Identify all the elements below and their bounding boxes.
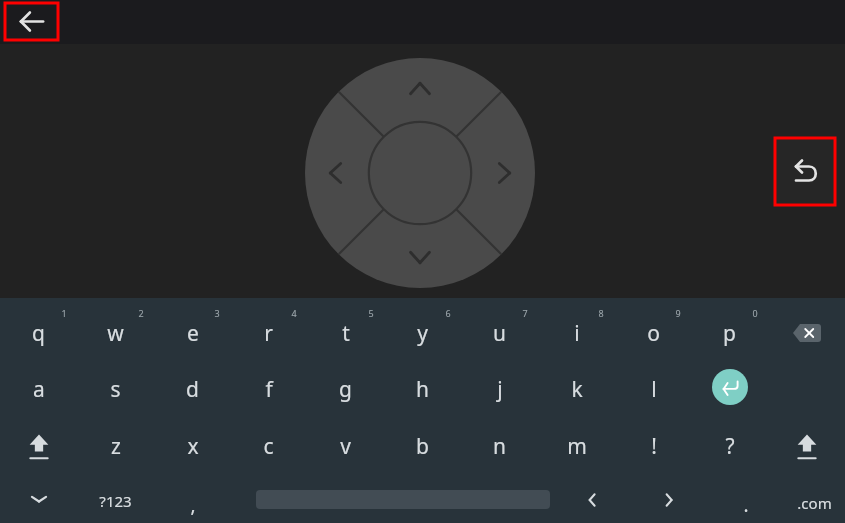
button[interactable]: k xyxy=(538,361,615,417)
button[interactable]: p xyxy=(691,305,768,361)
staticText: o xyxy=(647,319,660,348)
button[interactable]: n xyxy=(461,418,538,474)
staticText: f xyxy=(265,375,273,404)
staticText: 8 xyxy=(598,307,604,319)
button[interactable]: Up xyxy=(395,62,445,102)
button[interactable]: Down xyxy=(395,244,445,284)
staticText: 7 xyxy=(522,307,528,319)
staticText: c xyxy=(263,432,274,461)
button[interactable]: d xyxy=(154,361,231,417)
button[interactable]: m xyxy=(538,418,615,474)
button[interactable]: ? xyxy=(691,418,768,474)
staticText: p xyxy=(723,319,736,348)
staticText: z xyxy=(111,432,121,461)
staticText: d xyxy=(186,375,199,404)
button[interactable]: ! xyxy=(615,418,692,474)
staticText: 5 xyxy=(368,307,374,319)
button[interactable]: r xyxy=(230,305,307,361)
button[interactable]: e xyxy=(154,305,231,361)
button[interactable]: q xyxy=(0,305,77,361)
staticText: v xyxy=(340,432,351,461)
button[interactable]: Enter xyxy=(712,369,748,405)
button[interactable]: o xyxy=(615,305,692,361)
button[interactable]: s xyxy=(77,361,154,417)
button[interactable]: j xyxy=(461,361,538,417)
staticText: s xyxy=(110,375,121,404)
staticText: l xyxy=(651,375,657,404)
button[interactable]: t xyxy=(307,305,384,361)
staticText: g xyxy=(339,375,352,404)
staticText: 0 xyxy=(752,307,758,319)
button[interactable]: f xyxy=(230,361,307,417)
button[interactable]: Right xyxy=(491,148,531,198)
staticText: u xyxy=(493,319,506,348)
button[interactable]: Back xyxy=(5,3,58,40)
button[interactable]: z xyxy=(77,418,154,474)
button[interactable]: i xyxy=(538,305,615,361)
button[interactable]: y xyxy=(384,305,461,361)
button[interactable]: Select xyxy=(369,122,471,224)
button[interactable]: b xyxy=(384,418,461,474)
button[interactable]: h xyxy=(384,361,461,417)
staticText: m xyxy=(567,432,587,461)
button[interactable]: w xyxy=(77,305,154,361)
staticText: n xyxy=(493,432,506,461)
staticText: x xyxy=(187,432,199,461)
staticText: w xyxy=(107,319,124,348)
button[interactable]: v xyxy=(307,418,384,474)
staticText: ?123 xyxy=(99,491,132,511)
staticText: h xyxy=(416,375,429,404)
staticText: k xyxy=(571,375,583,404)
staticText: 1 xyxy=(61,307,67,319)
button[interactable]: g xyxy=(307,361,384,417)
button[interactable]: Shift xyxy=(768,418,845,474)
staticText: ! xyxy=(651,432,657,461)
button[interactable]: Shift xyxy=(0,418,77,474)
button[interactable]: x xyxy=(154,418,231,474)
staticText: i xyxy=(574,319,580,348)
staticText: r xyxy=(264,319,273,348)
staticText: y xyxy=(417,319,428,348)
staticText: 4 xyxy=(291,307,297,319)
button[interactable]: , xyxy=(154,482,231,523)
staticText: .com xyxy=(797,493,832,513)
staticText: b xyxy=(416,432,429,461)
staticText: e xyxy=(187,319,199,348)
button[interactable]: .com xyxy=(776,481,845,523)
button[interactable]: Left xyxy=(309,148,349,198)
button[interactable]: Hide keyboard xyxy=(0,476,77,522)
button[interactable]: . xyxy=(707,483,784,523)
staticText: , xyxy=(190,492,196,518)
button[interactable]: u xyxy=(461,305,538,361)
button[interactable]: a xyxy=(0,361,77,417)
staticText: a xyxy=(33,375,45,404)
button[interactable]: Backspace xyxy=(768,306,845,360)
staticText: t xyxy=(342,319,350,348)
staticText: j xyxy=(497,375,503,404)
button[interactable]: ?123 xyxy=(77,478,154,523)
button[interactable]: Cursor left xyxy=(553,478,630,522)
button[interactable]: Cursor right xyxy=(630,478,707,522)
staticText: 3 xyxy=(214,307,220,319)
staticText: 9 xyxy=(675,307,681,319)
button[interactable]: Undo xyxy=(775,138,835,205)
staticText: q xyxy=(32,319,45,348)
staticText: ? xyxy=(725,432,735,461)
button[interactable]: l xyxy=(615,361,692,417)
button[interactable]: c xyxy=(230,418,307,474)
staticText: 6 xyxy=(445,307,451,319)
staticText: . xyxy=(743,492,749,518)
staticText: 2 xyxy=(138,307,144,319)
